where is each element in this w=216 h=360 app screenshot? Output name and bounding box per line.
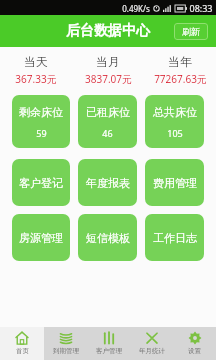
button[interactable]: 总共床位	[145, 95, 204, 148]
staticText: 客户管理	[96, 347, 122, 355]
button[interactable]: 首页	[0, 327, 44, 360]
staticText: 年月统计	[139, 347, 165, 355]
staticText: 房源管理	[19, 231, 63, 245]
staticText: 费用管理	[153, 176, 197, 190]
staticText: 设置	[188, 347, 201, 355]
staticText: 已租床位	[86, 105, 130, 119]
staticText: 当月	[96, 54, 120, 69]
button[interactable]: 设置	[173, 327, 216, 360]
button[interactable]: 工作日志	[145, 214, 204, 261]
staticText: 后台数据中心	[66, 22, 150, 40]
staticText: 首页	[16, 347, 29, 355]
button[interactable]: 客户登记	[12, 159, 70, 206]
staticText: 367.33元	[15, 72, 57, 86]
button[interactable]: 当天	[0, 54, 72, 86]
staticText: 0.49K/s	[122, 3, 150, 14]
button[interactable]: 年度报表	[78, 159, 137, 206]
staticText: 08:33	[189, 2, 213, 14]
staticText: 105	[167, 127, 183, 139]
button[interactable]: 刷新	[174, 23, 208, 40]
button[interactable]: 客户管理	[87, 327, 130, 360]
staticText: 客户登记	[19, 176, 63, 190]
button[interactable]: 已租床位	[78, 95, 137, 148]
button[interactable]: 短信模板	[78, 214, 137, 261]
button[interactable]: 年月统计	[130, 327, 173, 360]
staticText: 77267.63元	[154, 72, 207, 86]
staticText: 剩余床位	[19, 105, 63, 119]
staticText: 到期管理	[53, 347, 79, 355]
staticText: 当天	[24, 54, 48, 69]
staticText: 当年	[168, 54, 192, 69]
staticText: 46	[102, 127, 113, 139]
staticText: 59	[36, 127, 47, 139]
button[interactable]: 房源管理	[12, 214, 70, 261]
button[interactable]: 费用管理	[145, 159, 204, 206]
button[interactable]: 当月	[72, 54, 144, 86]
staticText: 工作日志	[153, 231, 197, 245]
staticText: 年度报表	[86, 176, 130, 190]
button[interactable]: 当年	[144, 54, 216, 86]
staticText: 刷新	[182, 26, 200, 37]
staticText: 3837.07元	[85, 72, 132, 86]
button[interactable]: 到期管理	[44, 327, 87, 360]
button[interactable]: 剩余床位	[12, 95, 70, 148]
staticText: 总共床位	[153, 105, 197, 119]
staticText: 短信模板	[86, 231, 130, 245]
